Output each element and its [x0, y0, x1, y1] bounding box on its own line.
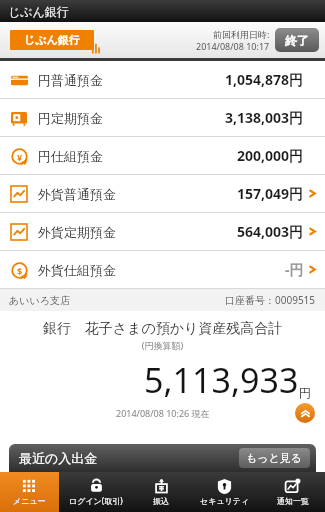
staticText: セキュリティ: [200, 496, 250, 506]
staticText: あいいろ支店: [9, 294, 70, 307]
staticText: 外貨仕組預金: [38, 262, 116, 278]
staticText: 200,000円: [237, 146, 304, 165]
staticText: もっと見る: [246, 451, 303, 465]
staticText: 1,054,878円: [225, 70, 304, 89]
staticText: 最近の入出金: [19, 450, 98, 466]
button[interactable]: 外貨普通預金: [0, 175, 325, 212]
button[interactable]: 上へスクロール: [295, 403, 315, 423]
staticText: $: [17, 265, 23, 277]
staticText: 円仕組預金: [38, 148, 103, 164]
button[interactable]: ¥: [0, 137, 325, 174]
staticText: 5,113,933: [144, 357, 299, 403]
staticText: じぶん銀行: [24, 33, 80, 47]
staticText: ¥: [17, 151, 23, 163]
staticText: ログイン(取引): [69, 495, 123, 506]
staticText: 円普通預金: [38, 72, 103, 88]
staticText: 振込: [153, 496, 169, 506]
button[interactable]: 円定期預金: [0, 99, 325, 136]
button[interactable]: じぶん銀行 ホーム: [10, 30, 94, 50]
staticText: 前回利用日時:: [213, 28, 270, 40]
staticText: 157,049円: [237, 184, 304, 203]
staticText: 銀行 花子さまの預かり資産残高合計: [0, 318, 325, 337]
staticText: 円: [299, 385, 311, 400]
staticText: 口座番号：0009515: [225, 293, 316, 307]
staticText: 564,003円: [237, 222, 304, 241]
button[interactable]: セキュリティ: [189, 472, 260, 512]
button[interactable]: メニュー: [0, 472, 59, 512]
button[interactable]: 通知一覧: [260, 472, 325, 512]
staticText: 外貨定期預金: [38, 224, 116, 240]
button[interactable]: 円普通預金: [0, 61, 325, 98]
staticText: 終了: [285, 33, 309, 48]
staticText: 2014/08/08 10:17: [196, 40, 270, 52]
staticText: じぶん銀行: [8, 4, 69, 19]
staticText: メニュー: [13, 496, 46, 506]
staticText: 円定期預金: [38, 110, 103, 126]
staticText: 2014/08/08 10:26 現在: [116, 407, 210, 419]
staticText: (円換算額): [0, 339, 325, 351]
button[interactable]: 終了: [275, 28, 319, 52]
button[interactable]: もっと見る: [239, 448, 310, 468]
staticText: -円: [285, 260, 304, 279]
button[interactable]: $: [0, 251, 325, 288]
button[interactable]: 振込: [133, 472, 189, 512]
button[interactable]: ログイン(取引): [59, 472, 133, 512]
button[interactable]: 外貨定期預金: [0, 213, 325, 250]
staticText: 外貨普通預金: [38, 186, 116, 202]
button[interactable]: 最近の入出金: [9, 444, 316, 472]
staticText: 3,138,003円: [225, 108, 304, 127]
staticText: 通知一覧: [277, 496, 309, 506]
